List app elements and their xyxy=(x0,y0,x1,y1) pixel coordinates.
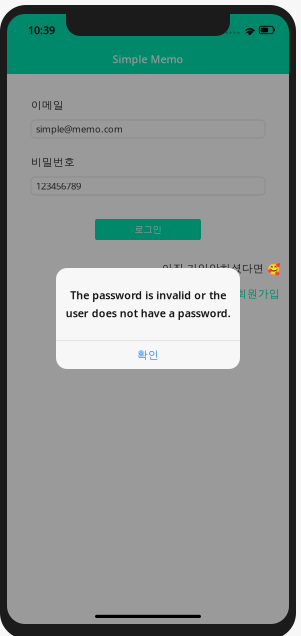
staticText: 확인 xyxy=(137,348,159,361)
staticText: 이메일 xyxy=(31,98,64,111)
button[interactable]: 로그인 xyxy=(95,219,201,240)
staticText: 로그인 xyxy=(134,224,161,235)
staticText: 회원가입 xyxy=(236,287,280,300)
button[interactable]: simple@memo.com xyxy=(31,120,265,138)
button[interactable]: 회원가입 xyxy=(236,287,280,300)
staticText: 아직 가입안하셨다면 🥰 xyxy=(162,262,280,275)
staticText: The password is invalid or the user does… xyxy=(65,288,230,320)
staticText: Simple Memo xyxy=(112,52,183,66)
button[interactable]: 123456789 xyxy=(31,177,265,195)
staticText: 비밀번호 xyxy=(31,155,75,168)
staticText: simple@memo.com xyxy=(36,123,123,135)
staticText: 123456789 xyxy=(36,180,81,192)
button[interactable]: 확인 xyxy=(56,341,240,369)
staticText: 10:39 xyxy=(28,23,55,37)
